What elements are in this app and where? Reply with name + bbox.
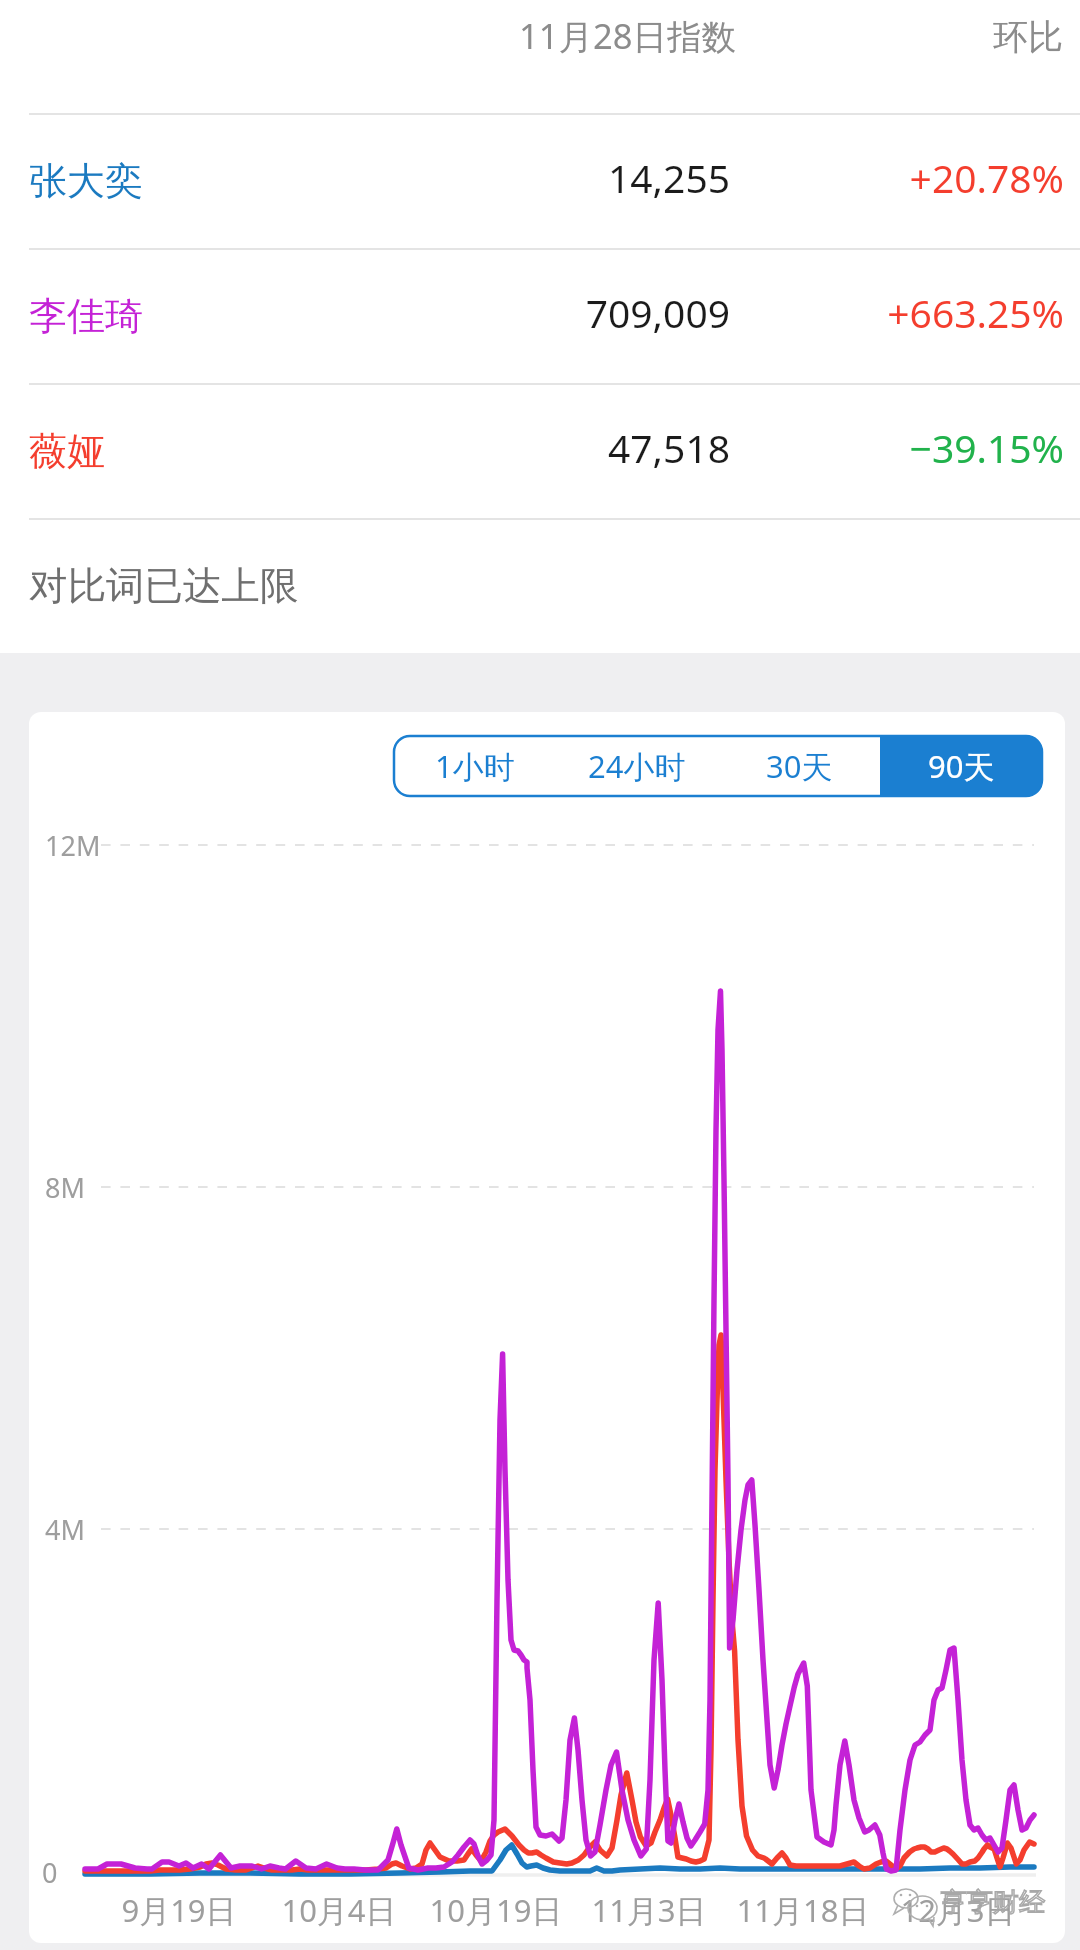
button[interactable]: 1小时 (394, 736, 556, 796)
staticText: 12月3日 (858, 1889, 1058, 1931)
staticText: +663.25% (664, 286, 1064, 339)
button[interactable]: 薇娅 (0, 383, 1080, 518)
staticText: 张大奕 (29, 157, 143, 205)
staticText: 90天 (928, 745, 995, 787)
button[interactable]: 30天 (718, 736, 880, 796)
staticText: 亨亨财经 (941, 1886, 1045, 1919)
button[interactable]: 张大奕 (0, 113, 1080, 248)
staticText: 11月18日 (703, 1889, 903, 1931)
other: WeChat official account (892, 1886, 942, 1926)
staticText: +20.78% (664, 151, 1064, 204)
staticText: 4M (45, 1511, 85, 1548)
button[interactable]: 24小时 (556, 736, 718, 796)
staticText: 709,009 (330, 286, 730, 339)
staticText: 1小时 (435, 745, 515, 787)
staticText: 对比词已达上限 (29, 562, 299, 611)
staticText: 24小时 (588, 745, 686, 787)
staticText: 30天 (766, 745, 833, 787)
staticText: 47,518 (330, 421, 730, 474)
staticText: 9月19日 (79, 1889, 279, 1931)
staticText: 10月4日 (239, 1889, 439, 1931)
button[interactable]: 90天 (880, 736, 1042, 796)
staticText: 11月28日指数 (519, 12, 736, 59)
staticText: 10月19日 (396, 1889, 596, 1931)
staticText: 8M (45, 1169, 85, 1206)
staticText: 14,255 (330, 151, 730, 204)
staticText: −39.15% (664, 421, 1064, 474)
staticText: 薇娅 (29, 427, 105, 475)
staticText: 0 (42, 1854, 58, 1891)
staticText: 12M (45, 827, 101, 864)
staticText: 李佳琦 (29, 292, 143, 340)
button[interactable]: 李佳琦 (0, 248, 1080, 383)
staticText: 环比 (993, 15, 1063, 59)
staticText: 11月3日 (549, 1889, 749, 1931)
